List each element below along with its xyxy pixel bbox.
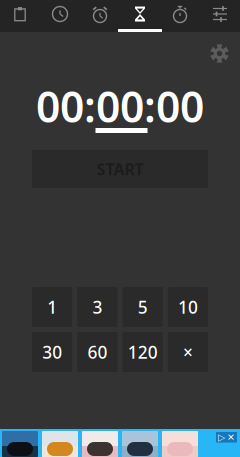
button[interactable]: Notes	[0, 0, 40, 32]
staticText: 60	[87, 340, 107, 363]
staticText: START	[96, 158, 143, 180]
staticText: 30	[42, 340, 62, 363]
button[interactable]: 30	[32, 332, 72, 372]
staticText: ▷	[218, 432, 225, 443]
button[interactable]: 120	[122, 332, 163, 372]
staticText: 5	[138, 295, 148, 318]
button[interactable]: 60	[77, 332, 117, 372]
button[interactable]: 1	[32, 287, 72, 327]
staticText: 3	[92, 295, 102, 318]
staticText: 1	[47, 295, 57, 318]
button[interactable]: 10	[168, 287, 208, 327]
staticText: 120	[128, 340, 158, 363]
button[interactable]: Clock	[40, 0, 80, 32]
staticText: ✕	[227, 432, 235, 443]
staticText: ×	[183, 340, 193, 363]
button[interactable]: Alarm	[80, 0, 120, 32]
button[interactable]: 3	[77, 287, 117, 327]
button[interactable]: Tools	[200, 0, 240, 32]
button[interactable]: Timer	[120, 0, 160, 32]
button[interactable]: ×	[168, 332, 208, 372]
button[interactable]: Settings	[205, 39, 234, 68]
staticText: 10	[178, 295, 198, 318]
button[interactable]: 5	[122, 287, 163, 327]
button[interactable]: Stopwatch	[160, 0, 200, 32]
staticText: 00:00:00	[36, 78, 204, 134]
